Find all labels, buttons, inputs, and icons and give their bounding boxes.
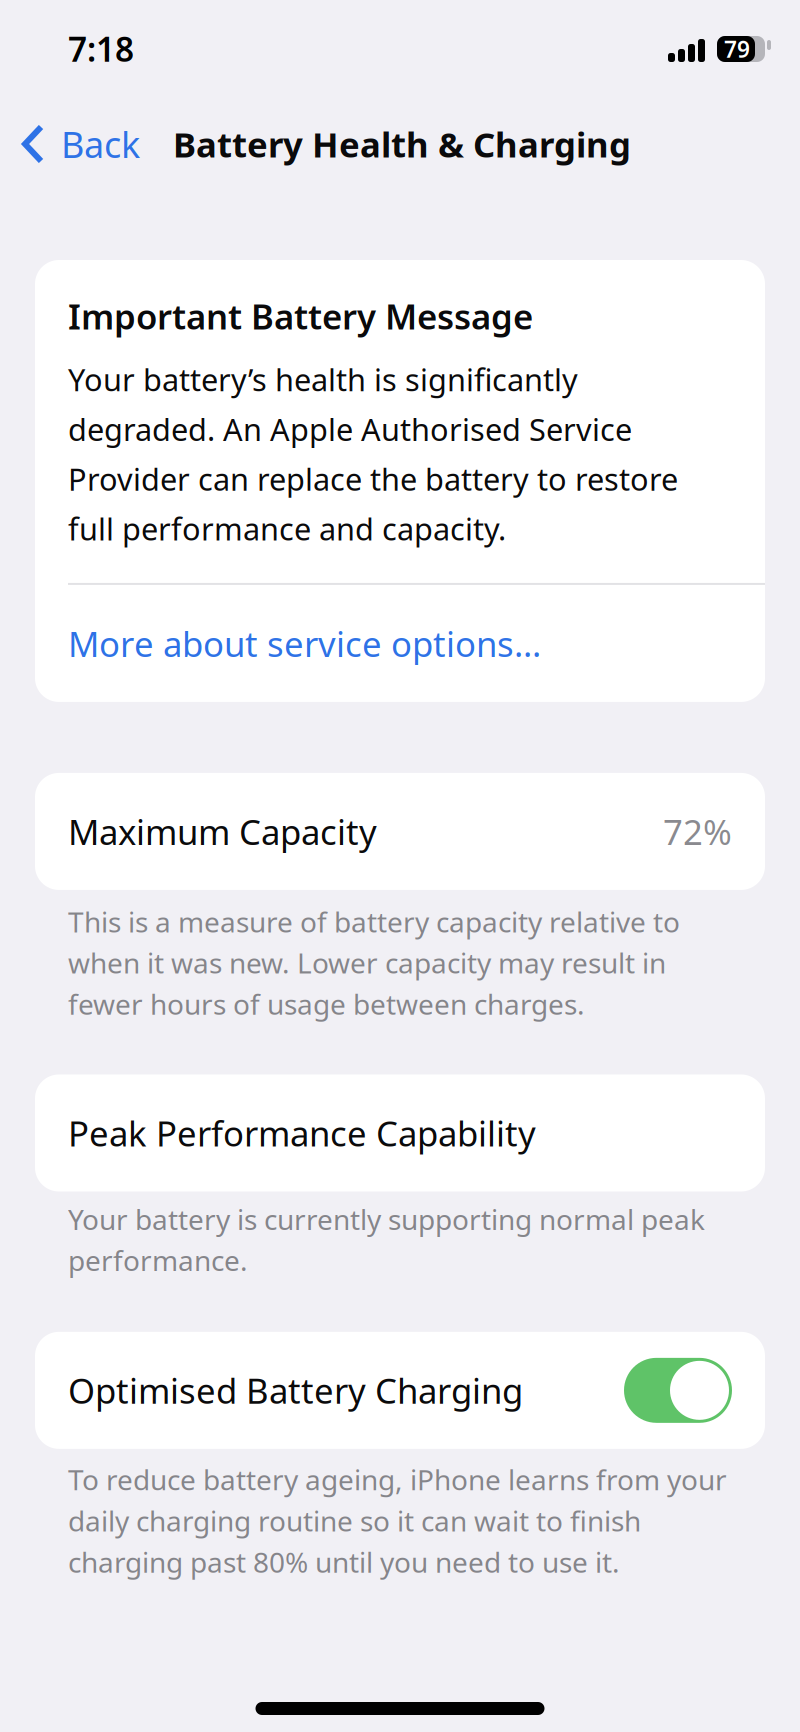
staticText: This is a measure of battery capacity re… [68, 903, 680, 1022]
staticText: 72% [663, 808, 732, 854]
staticText: 79 [724, 34, 750, 64]
staticText: More about service options... [68, 620, 541, 666]
button[interactable]: Back [0, 105, 154, 183]
staticText: 7:18 [68, 27, 134, 71]
button[interactable]: Peak Performance Capability [35, 1074, 765, 1191]
staticText: To reduce battery ageing, iPhone learns … [68, 1461, 727, 1580]
staticText: Your battery’s health is significantly d… [68, 359, 678, 549]
staticText: Optimised Battery Charging [68, 1367, 523, 1413]
staticText: Your battery is currently supporting nor… [68, 1200, 705, 1279]
staticText: Back [61, 120, 140, 168]
staticText: Battery Health & Charging [173, 121, 631, 167]
button[interactable]: More about service options... [68, 585, 732, 702]
staticText: Peak Performance Capability [68, 1110, 536, 1156]
staticText: Maximum Capacity [68, 808, 377, 854]
button[interactable]: Optimised Battery Charging [624, 1358, 732, 1423]
staticText: Important Battery Message [68, 293, 533, 339]
